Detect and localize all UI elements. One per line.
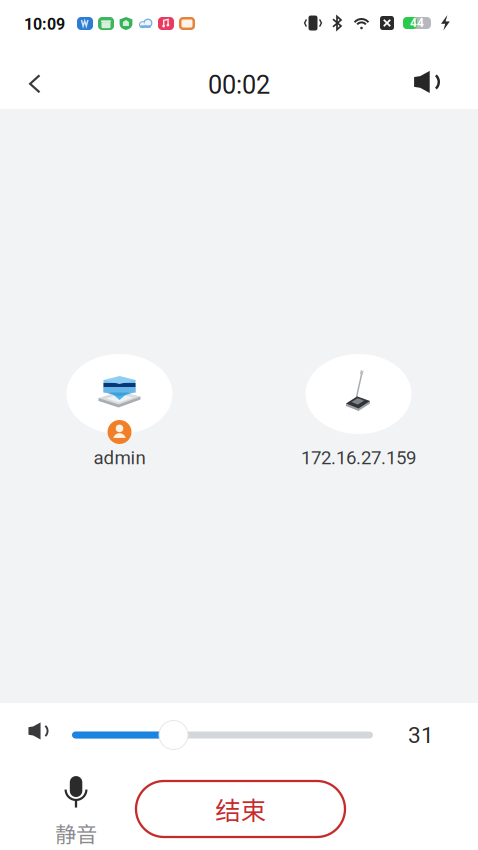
- staticText: 44: [410, 16, 424, 30]
- button[interactable]: admin: [0, 354, 239, 469]
- staticText: 00:02: [208, 70, 270, 100]
- staticText: admin: [93, 447, 145, 469]
- staticText: 10:09: [24, 15, 65, 34]
- button[interactable]: 静音: [31, 777, 121, 847]
- button[interactable]: Speaker: [403, 56, 455, 108]
- button[interactable]: Back: [9, 58, 61, 110]
- button[interactable]: 结束: [136, 781, 345, 837]
- button[interactable]: 172.16.27.159: [239, 354, 478, 469]
- button[interactable]: Speaker volume: [23, 716, 57, 746]
- staticText: 172.16.27.159: [301, 447, 416, 469]
- staticText: 结束: [215, 791, 265, 827]
- staticText: 31: [408, 722, 434, 749]
- staticText: 静音: [55, 818, 97, 848]
